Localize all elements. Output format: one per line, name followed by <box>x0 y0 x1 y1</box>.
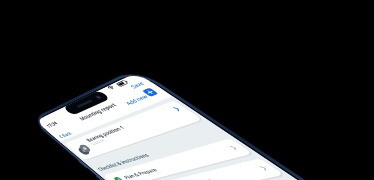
button[interactable]: Mounting report screen preview <box>0 0 374 180</box>
